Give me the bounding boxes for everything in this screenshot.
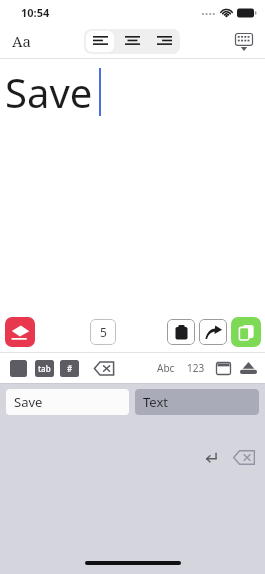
staticText: 123 bbox=[187, 361, 205, 375]
staticText: 5 bbox=[100, 324, 107, 340]
button[interactable]: Abc bbox=[155, 361, 177, 375]
staticText: Abc bbox=[157, 361, 175, 375]
staticText: Aa bbox=[12, 31, 32, 51]
button[interactable]: Space bbox=[10, 360, 27, 377]
staticText: # bbox=[67, 363, 73, 374]
button[interactable]: Hide keyboard bbox=[229, 26, 259, 56]
button[interactable]: Calendar bbox=[216, 362, 231, 375]
button[interactable]: Share bbox=[199, 319, 227, 345]
staticText: Save bbox=[5, 65, 93, 119]
button[interactable]: Delete bbox=[233, 449, 255, 466]
button[interactable]: Copy bbox=[231, 317, 261, 347]
button[interactable]: Save bbox=[6, 389, 129, 415]
button[interactable]: tab bbox=[35, 360, 54, 377]
staticText: Save bbox=[14, 393, 43, 411]
button[interactable]: Return bbox=[202, 448, 220, 466]
button[interactable]: Paste bbox=[167, 319, 195, 345]
staticText: Text bbox=[143, 393, 168, 411]
staticText: tab bbox=[38, 363, 51, 374]
button[interactable]: 123 bbox=[185, 361, 207, 375]
button[interactable]: Align center bbox=[118, 31, 146, 52]
staticText: 10:54 bbox=[21, 5, 50, 20]
button[interactable]: Eraser bbox=[5, 317, 35, 347]
button[interactable]: Archive bbox=[240, 361, 257, 375]
button[interactable]: # bbox=[60, 360, 79, 377]
button[interactable]: 5 bbox=[90, 319, 116, 345]
button[interactable]: Text bbox=[135, 389, 259, 415]
button[interactable]: Align right bbox=[150, 31, 178, 52]
button[interactable]: Backspace bbox=[94, 361, 114, 376]
button[interactable]: Align left bbox=[86, 31, 114, 52]
button[interactable]: Font options bbox=[6, 25, 38, 57]
